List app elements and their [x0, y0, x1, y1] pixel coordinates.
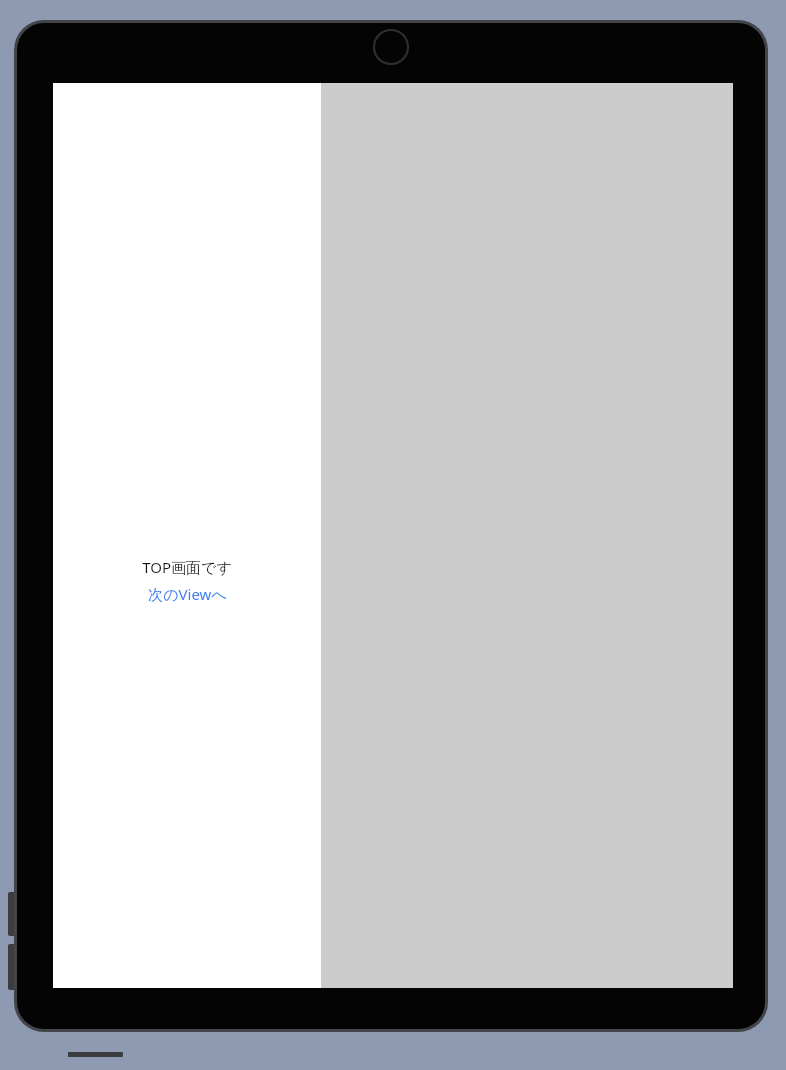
button[interactable]: Volume down [8, 944, 20, 990]
button[interactable]: 次のViewへ [144, 583, 231, 605]
button[interactable]: Volume up [8, 892, 20, 936]
staticText: 次のViewへ [148, 584, 227, 604]
staticText: TOP画面です [142, 557, 232, 577]
